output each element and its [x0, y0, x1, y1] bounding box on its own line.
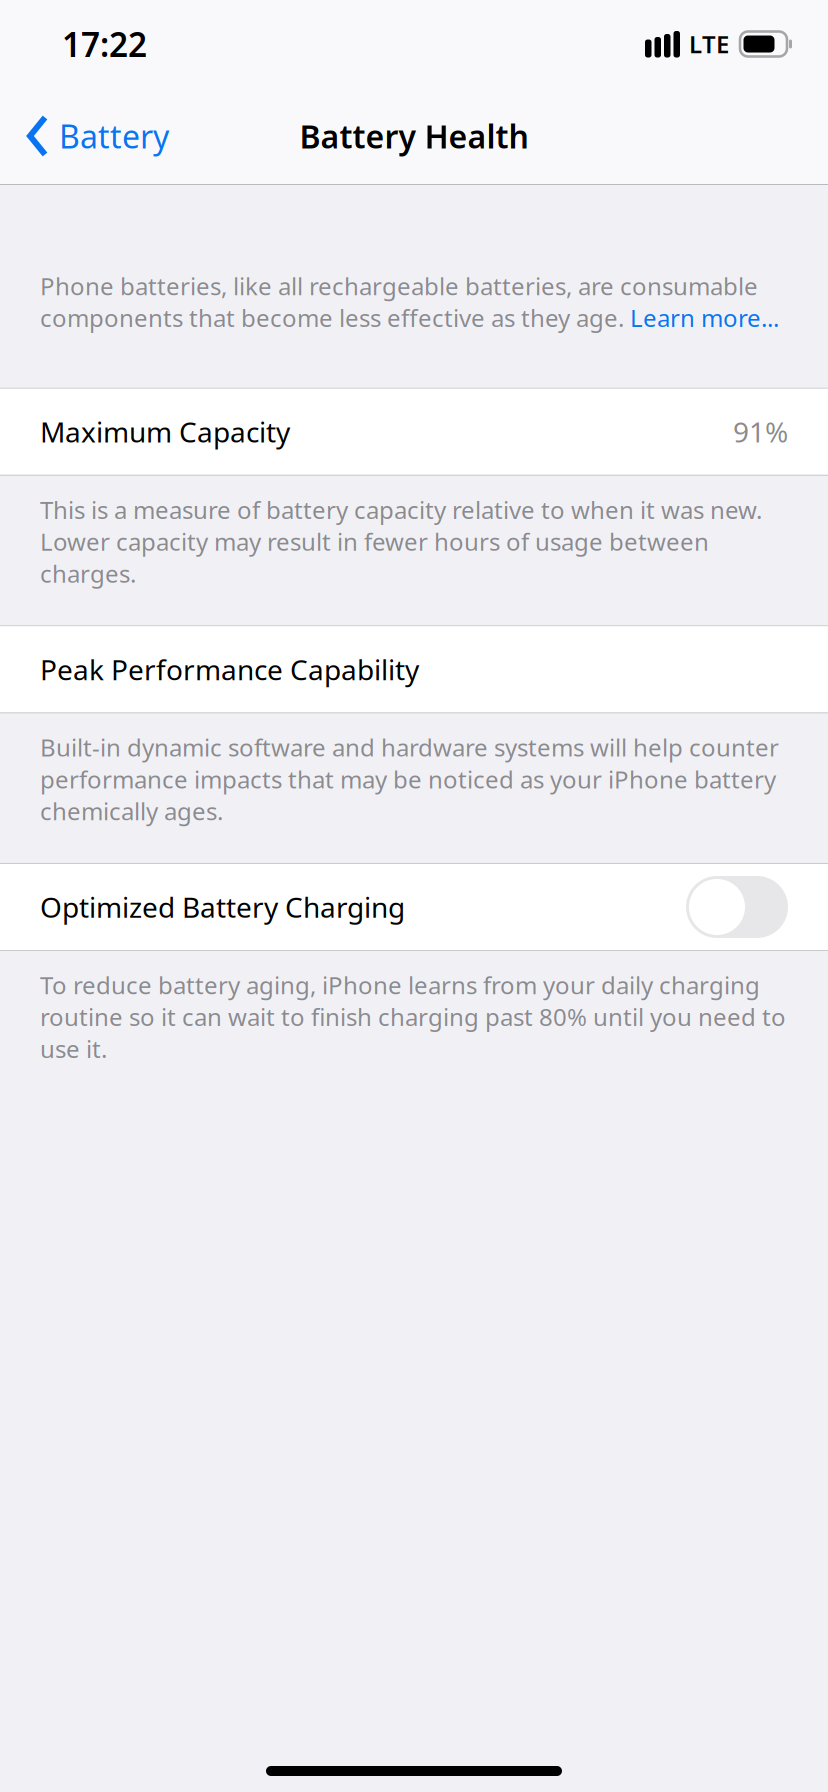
staticText: To reduce battery aging, iPhone learns f…	[40, 969, 786, 1065]
staticText: This is a measure of battery capacity re…	[40, 494, 762, 589]
staticText: 91%	[733, 413, 788, 450]
staticText: Maximum Capacity	[40, 413, 290, 450]
button[interactable]: Optimized Battery Charging	[0, 864, 828, 950]
staticText: components that become less effective as…	[40, 302, 630, 334]
staticText: Learn more...	[630, 302, 779, 334]
button[interactable]: Maximum Capacity	[0, 389, 828, 475]
staticText: Phone batteries, like all rechargeable b…	[40, 270, 758, 302]
staticText: Built-in dynamic software and hardware s…	[40, 731, 779, 827]
staticText: Optimized Battery Charging	[40, 888, 405, 926]
staticText: LTE	[689, 28, 729, 60]
staticText: Battery	[59, 115, 169, 157]
staticText: Peak Performance Capability	[40, 651, 419, 688]
staticText: 17:22	[62, 22, 147, 66]
button[interactable]: Learn more...	[630, 302, 779, 334]
button[interactable]: Battery	[0, 102, 187, 169]
staticText: Battery Health	[299, 115, 528, 157]
button[interactable]: Peak Performance Capability	[0, 626, 828, 712]
